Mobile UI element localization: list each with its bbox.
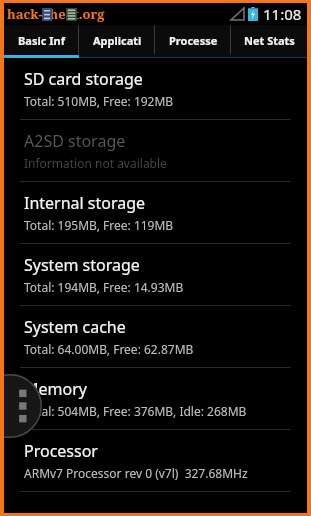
staticText: Total: 195MB, Free: 119MB — [24, 217, 174, 233]
staticText: Total: 510MB, Free: 192MB — [24, 93, 174, 109]
staticText: Net Stats — [244, 33, 295, 48]
staticText: Internal storage — [24, 192, 146, 214]
button[interactable]: Processe — [155, 25, 231, 55]
staticText: System cache — [24, 316, 126, 338]
staticText: ARMv7 Processor rev 0 (v7l) 327.68MHz — [24, 465, 248, 481]
staticText: Processor — [24, 440, 98, 462]
staticText: Total: 64.00MB, Free: 62.87MB — [24, 341, 194, 357]
staticText: Processe — [169, 33, 218, 48]
button[interactable]: Basic Inf — [4, 25, 79, 55]
button[interactable]: Drag handle — [4, 374, 42, 438]
button[interactable]: Processor — [4, 430, 307, 491]
staticText: SD card storage — [24, 68, 143, 90]
button[interactable]: Net Stats — [231, 25, 307, 55]
staticText: Total: 504MB, Free: 376MB, Idle: 268MB — [24, 403, 247, 419]
staticText: Basic Inf — [18, 33, 65, 48]
staticText: A2SD storage — [24, 130, 126, 152]
button[interactable]: System cache — [4, 306, 307, 367]
button[interactable]: System storage — [4, 244, 307, 305]
staticText: Information not available — [24, 155, 167, 171]
staticText: Total: 194MB, Free: 14.93MB — [24, 279, 184, 295]
staticText: hack-cheat.org — [7, 5, 105, 23]
staticText: 11:08 — [263, 4, 302, 24]
button[interactable]: A2SD storage — [4, 120, 307, 181]
staticText: Memory — [24, 378, 87, 400]
staticText: Applicati — [93, 33, 142, 48]
button[interactable]: SD card storage — [4, 58, 307, 119]
button[interactable]: Applicati — [79, 25, 155, 55]
button[interactable]: Internal storage — [4, 182, 307, 243]
staticText: System storage — [24, 254, 140, 276]
button[interactable]: Memory — [4, 368, 307, 429]
